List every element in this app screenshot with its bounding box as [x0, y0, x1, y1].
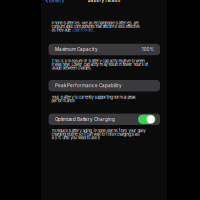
staticText: Peak Performance Capability — [55, 83, 122, 88]
button[interactable]: Optimized Battery Charging — [48, 114, 160, 125]
staticText: 100% — [142, 47, 154, 52]
staticText: it was new. Lower capacity may result in… — [51, 62, 148, 67]
staticText: Learn more... — [72, 27, 95, 32]
staticText: charging routine so it can wait to finis… — [51, 132, 139, 137]
staticText: usage between charges. — [51, 65, 91, 70]
staticText: This is a measure of battery capacity re… — [51, 59, 144, 63]
staticText: To reduce battery aging, iPhone learns f… — [51, 128, 145, 133]
staticText: 80% until you need to use it. — [51, 135, 100, 140]
button[interactable]: Battery — [41, 0, 68, 4]
staticText: Battery — [49, 0, 65, 3]
staticText: performance. — [51, 98, 75, 103]
staticText: Battery Health — [87, 0, 120, 3]
staticText: Phone batteries, like all rechargeable b… — [51, 21, 138, 25]
button[interactable]: Learn more... — [72, 27, 95, 32]
staticText: Optimized Battery Charging — [55, 117, 115, 122]
button[interactable]: Peak Performance Capability — [48, 80, 160, 91]
staticText: as they age. — [51, 27, 72, 32]
staticText: consumable components that become less e… — [51, 24, 139, 29]
staticText: Maximum Capacity — [55, 47, 98, 52]
staticText: Your battery is currently supporting nor… — [51, 95, 135, 100]
button[interactable]: Maximum Capacity — [48, 44, 160, 55]
